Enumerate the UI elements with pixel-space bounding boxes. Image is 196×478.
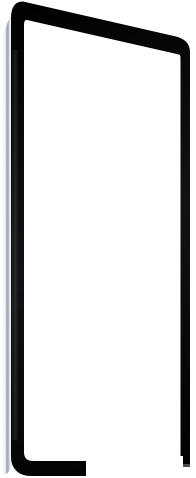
other: Tablet device photograph (0, 0, 196, 478)
